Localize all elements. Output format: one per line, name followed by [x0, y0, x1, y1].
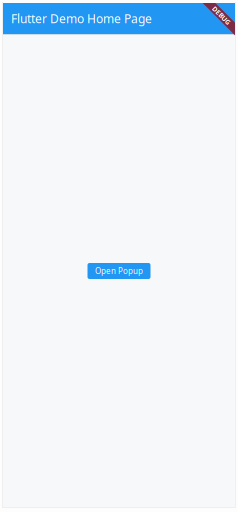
button[interactable]: Open Popup [87, 263, 150, 279]
staticText: Flutter Demo Home Page [11, 10, 152, 26]
staticText: DEBUG [210, 11, 233, 20]
staticText: Open Popup [95, 266, 143, 276]
